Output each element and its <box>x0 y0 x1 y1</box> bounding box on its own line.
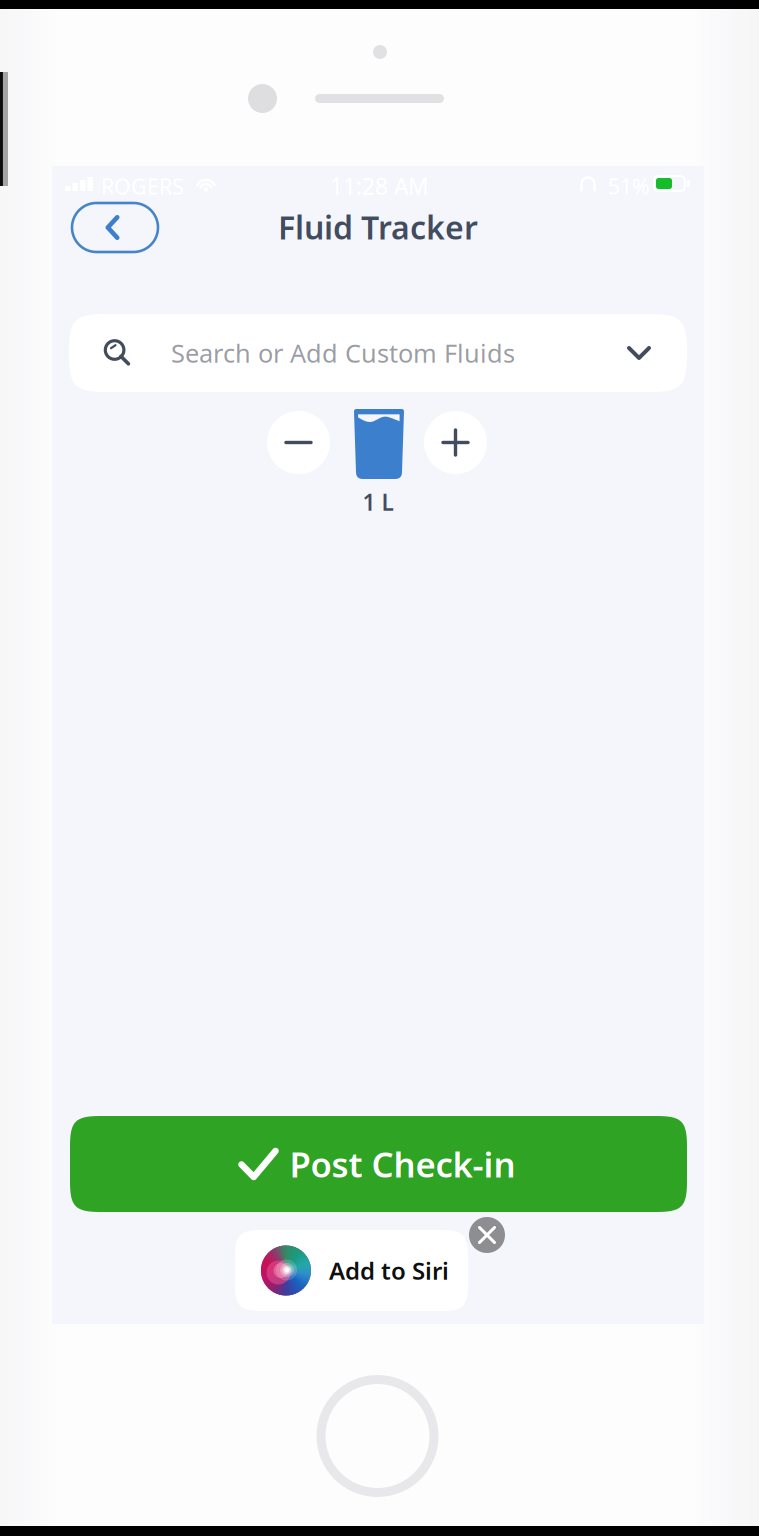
staticText: Post Check-in <box>289 1141 515 1187</box>
staticText: 1 L <box>362 487 393 517</box>
staticText: 51% <box>608 172 650 200</box>
button[interactable]: Increase amount <box>424 411 487 474</box>
staticText: 11:28 AM <box>330 171 429 201</box>
button[interactable]: Search or Add Custom Fluids <box>69 314 687 392</box>
button[interactable]: Back <box>72 203 158 252</box>
staticText: Search or Add Custom Fluids <box>171 336 515 370</box>
button[interactable]: Decrease amount <box>267 411 330 474</box>
button[interactable]: Post Check-in <box>70 1116 687 1212</box>
staticText: ROGERS <box>101 172 184 200</box>
button[interactable]: Remove shortcut <box>469 1217 505 1253</box>
staticText: Add to Siri <box>329 1255 449 1286</box>
button[interactable]: Add to Siri <box>235 1230 468 1311</box>
staticText: Fluid Tracker <box>278 206 478 248</box>
